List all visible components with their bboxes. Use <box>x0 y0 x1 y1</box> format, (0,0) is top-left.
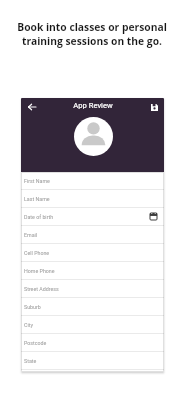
button[interactable]: State <box>21 352 164 370</box>
button[interactable]: Postcode <box>21 334 164 352</box>
button[interactable]: Cell Phone <box>21 244 164 262</box>
staticText: First Name <box>24 178 157 184</box>
staticText: Email <box>24 232 157 238</box>
staticText: City <box>24 322 157 328</box>
button[interactable]: Street Address <box>21 280 164 298</box>
button[interactable]: Back <box>24 99 40 115</box>
staticText: Street Address <box>24 286 157 292</box>
staticText: Book into classes or personal training s… <box>17 20 167 48</box>
button[interactable]: First Name <box>21 172 164 190</box>
staticText: Postcode <box>24 340 157 346</box>
staticText: Cell Phone <box>24 250 157 256</box>
staticText: Home Phone <box>24 268 157 274</box>
button[interactable]: Date of birth <box>21 208 164 226</box>
staticText: State <box>24 358 157 364</box>
staticText: Last Name <box>24 196 157 202</box>
button[interactable]: Last Name <box>21 190 164 208</box>
button[interactable]: Profile photo <box>74 117 113 156</box>
button[interactable]: Suburb <box>21 298 164 316</box>
button[interactable]: Email <box>21 226 164 244</box>
button[interactable]: Home Phone <box>21 262 164 280</box>
staticText: Date of birth <box>24 214 150 220</box>
staticText: Suburb <box>24 304 157 310</box>
staticText: App Review <box>73 101 113 110</box>
button[interactable]: Save <box>146 99 162 115</box>
button[interactable]: City <box>21 316 164 334</box>
